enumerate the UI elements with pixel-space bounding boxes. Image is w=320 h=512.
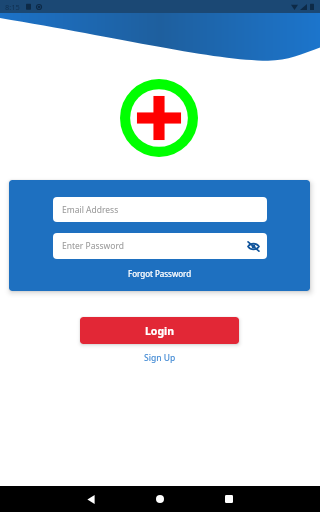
button[interactable]: Enter Password	[53, 233, 267, 259]
button[interactable]: Recent apps	[194, 486, 263, 512]
staticText: Email Address	[62, 204, 119, 216]
staticText: 8:15	[5, 2, 20, 12]
button[interactable]: Sign Up	[144, 352, 176, 364]
button[interactable]: Home	[125, 486, 194, 512]
button[interactable]: Back	[57, 486, 125, 512]
button[interactable]: Toggle password visibility	[245, 238, 262, 255]
button[interactable]: Forgot Password	[128, 268, 192, 279]
button[interactable]: Login	[80, 317, 239, 344]
button[interactable]: Email Address	[53, 197, 267, 222]
staticText: Login	[145, 324, 175, 338]
staticText: Enter Password	[62, 240, 125, 252]
